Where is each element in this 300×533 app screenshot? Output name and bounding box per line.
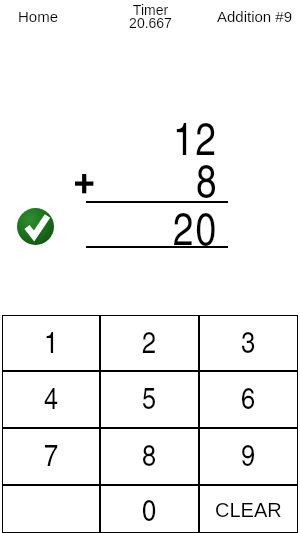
staticText: 8 — [142, 432, 157, 475]
staticText: CLEAR — [215, 499, 282, 521]
button[interactable]: 0 — [100, 485, 199, 533]
button[interactable]: 9 — [199, 428, 298, 485]
staticText: 3 — [241, 319, 256, 362]
button[interactable]: CLEAR — [199, 485, 298, 533]
staticText: 0 — [142, 487, 157, 530]
button[interactable]: 2 — [100, 315, 199, 371]
staticText: 8 — [196, 148, 217, 198]
button[interactable]: Home — [18, 8, 59, 25]
staticText: 6 — [241, 375, 256, 418]
button[interactable]: 6 — [199, 371, 298, 428]
staticText: Home — [18, 8, 59, 25]
staticText: 7 — [44, 432, 59, 475]
button[interactable]: 3 — [199, 315, 298, 371]
staticText: Addition #9 — [217, 8, 293, 25]
staticText: 2 — [142, 319, 157, 362]
button[interactable]: 7 — [2, 428, 100, 485]
button[interactable]: 5 — [100, 371, 199, 428]
staticText: 20 — [173, 196, 219, 246]
staticText: 9 — [241, 432, 256, 475]
staticText: 4 — [44, 375, 59, 418]
button[interactable] — [2, 485, 100, 533]
staticText: 5 — [142, 375, 157, 418]
staticText: 1 — [44, 319, 59, 362]
button[interactable]: 8 — [100, 428, 199, 485]
staticText: 12 — [173, 106, 219, 156]
button[interactable]: 1 — [2, 315, 100, 371]
button[interactable]: 4 — [2, 371, 100, 428]
staticText: Timer 20.667 — [129, 2, 172, 31]
